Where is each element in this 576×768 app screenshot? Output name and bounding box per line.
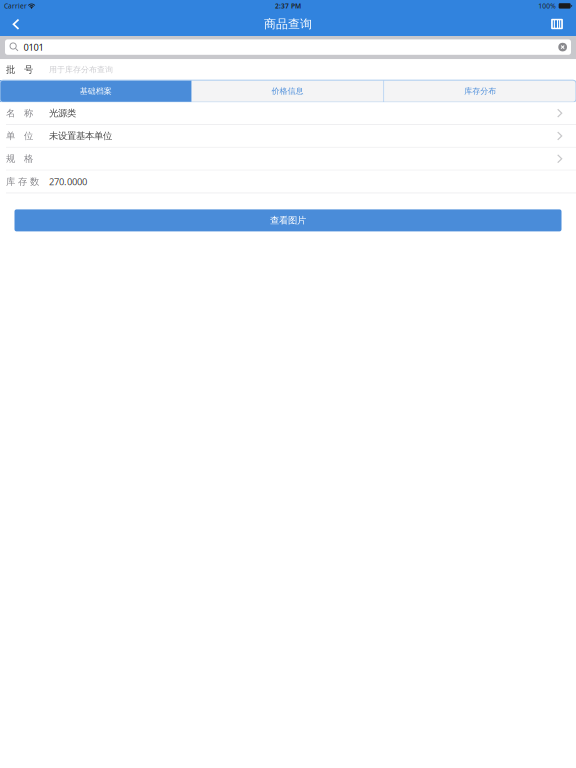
- staticText: 用于库存分布查询: [49, 65, 113, 75]
- button[interactable]: 规 格: [0, 148, 576, 171]
- staticText: 商品查询: [264, 17, 312, 31]
- staticText: 光源类: [49, 107, 76, 119]
- staticText: Carrier: [4, 1, 27, 10]
- staticText: 规 格: [6, 153, 33, 164]
- staticText: 基础档案: [80, 86, 112, 96]
- staticText: 价格信息: [271, 86, 303, 96]
- staticText: 270.0000: [49, 175, 87, 188]
- button[interactable]: 库 存 数: [0, 171, 576, 193]
- staticText: 库 存 数: [6, 176, 39, 187]
- staticText: 未设置基本单位: [49, 130, 112, 142]
- button[interactable]: 查看图片: [14, 209, 561, 231]
- button[interactable]: Clear text: [558, 43, 567, 51]
- staticText: 2:37 PM: [275, 1, 301, 10]
- button[interactable]: 名 称: [0, 102, 576, 125]
- staticText: 0101: [23, 41, 43, 53]
- button[interactable]: Scan barcode: [544, 15, 570, 36]
- staticText: 查看图片: [270, 215, 306, 226]
- button[interactable]: 基础档案: [0, 80, 192, 102]
- button[interactable]: 库存分布: [384, 80, 576, 102]
- staticText: 库存分布: [464, 86, 496, 96]
- button[interactable]: Back: [3, 15, 29, 36]
- staticText: 名 称: [6, 107, 33, 119]
- staticText: 单 位: [6, 130, 33, 142]
- staticText: 批 号: [6, 64, 33, 75]
- staticText: 100%: [538, 1, 556, 10]
- button[interactable]: 价格信息: [192, 80, 383, 102]
- button[interactable]: 单 位: [0, 125, 576, 148]
